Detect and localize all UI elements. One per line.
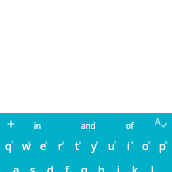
staticText: of [126,120,134,131]
button[interactable]: y [79,134,109,156]
button[interactable]: A [150,113,170,131]
button[interactable]: r [45,134,75,156]
staticText: 0 [165,140,168,145]
staticText: j [117,162,120,172]
staticText: and [81,120,96,131]
staticText: a [13,162,20,172]
button[interactable]: f [52,158,82,172]
staticText: 9 [148,140,151,145]
staticText: p [159,138,166,153]
button[interactable]: e [28,134,58,156]
staticText: h [98,162,105,172]
staticText: A [155,116,161,128]
button[interactable]: o [130,134,160,156]
button[interactable]: u [96,134,126,156]
staticText: r [58,138,63,153]
staticText: u [108,138,115,153]
staticText: w [22,138,31,153]
button[interactable]: i [113,134,143,156]
button[interactable]: l [137,158,167,172]
staticText: 3 [45,140,48,145]
staticText: in [34,120,42,131]
staticText: 1 [11,140,14,145]
button[interactable]: a [1,158,31,172]
button[interactable]: q [0,134,23,156]
staticText: y [91,138,97,153]
button[interactable]: g [69,158,99,172]
button[interactable]: p [147,134,172,156]
staticText: o [142,138,149,153]
staticText: 2 [28,140,31,145]
staticText: 5 [79,140,82,145]
button[interactable]: and [73,114,103,136]
staticText: e [40,138,47,153]
staticText: t [75,138,79,153]
button[interactable]: in [23,114,53,136]
staticText: q [5,138,12,153]
button[interactable] [3,116,19,132]
staticText: 8 [131,140,134,145]
button[interactable]: j [103,158,133,172]
staticText: l [151,162,154,172]
button[interactable]: of [115,114,145,136]
button[interactable]: w [11,134,41,156]
button[interactable]: k [120,158,150,172]
staticText: f [65,162,69,172]
button[interactable]: h [86,158,116,172]
button[interactable]: s [18,158,48,172]
button[interactable]: t [62,134,92,156]
staticText: k [132,162,138,172]
staticText: s [30,162,36,172]
staticText: 7 [114,140,117,145]
staticText: g [81,162,88,172]
staticText: i [127,138,130,153]
staticText: 4 [62,140,65,145]
button[interactable]: d [35,158,65,172]
staticText: 6 [96,140,99,145]
staticText: d [47,162,54,172]
